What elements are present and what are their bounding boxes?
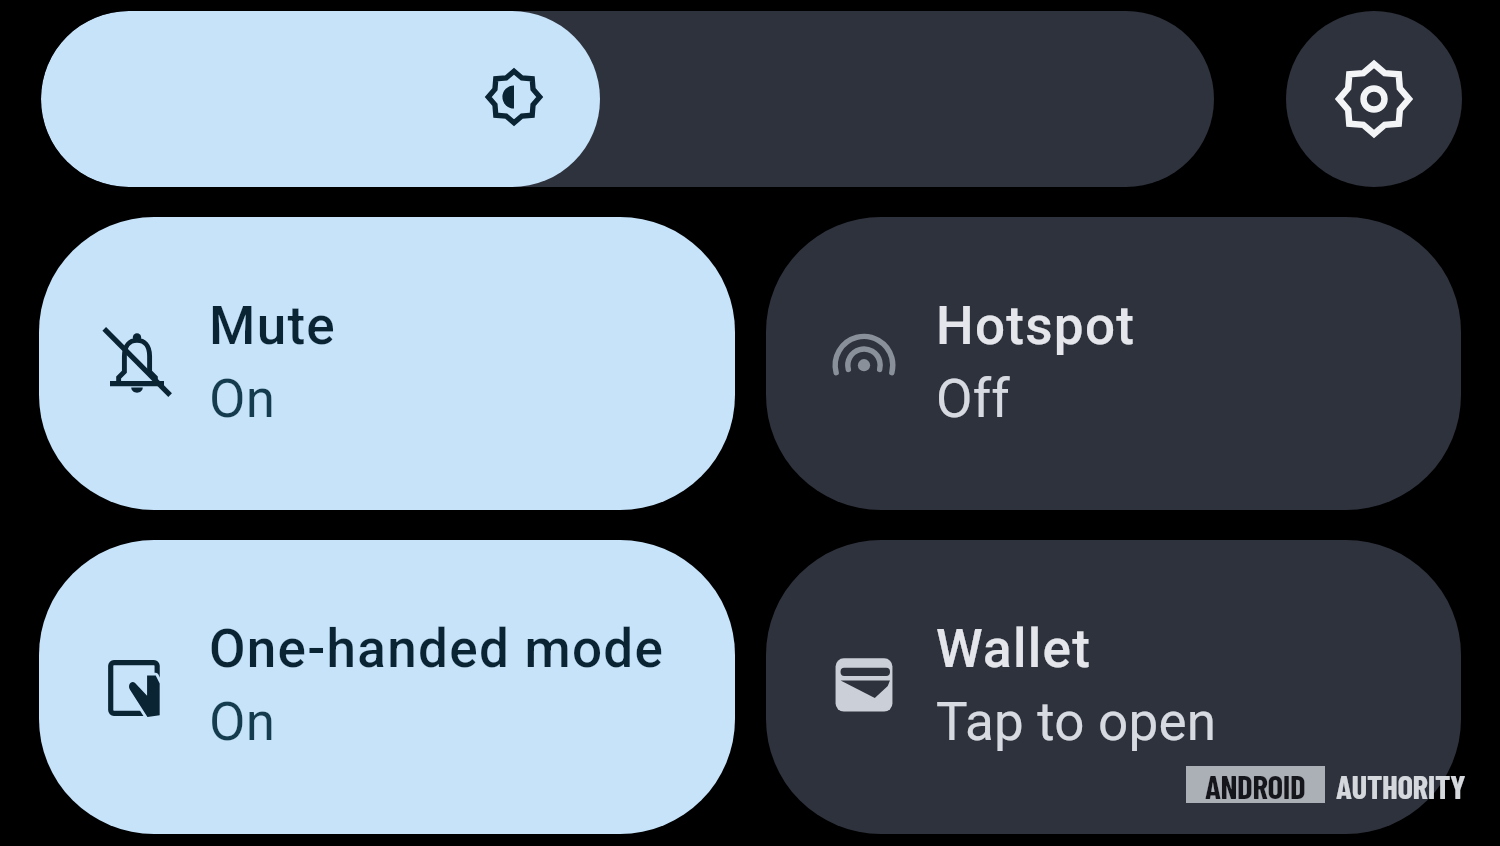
- button[interactable]: Settings: [1286, 11, 1462, 187]
- staticText: AUTHORITY: [1336, 766, 1466, 803]
- staticText: Hotspot: [936, 295, 1136, 357]
- button[interactable]: Hotspot: [766, 217, 1461, 510]
- staticText: ANDROID: [1205, 766, 1306, 803]
- button[interactable]: Wallet: [766, 540, 1461, 834]
- button[interactable]: Brightness: [41, 11, 1214, 187]
- staticText: Tap to open: [936, 691, 1217, 753]
- staticText: On: [209, 691, 276, 753]
- staticText: Wallet: [936, 618, 1092, 680]
- button[interactable]: Mute: [39, 217, 735, 510]
- staticText: On: [209, 368, 276, 430]
- staticText: Off: [936, 368, 1010, 430]
- staticText: Mute: [209, 295, 337, 357]
- staticText: One-handed mode: [209, 618, 665, 680]
- button[interactable]: One-handed mode: [39, 540, 735, 834]
